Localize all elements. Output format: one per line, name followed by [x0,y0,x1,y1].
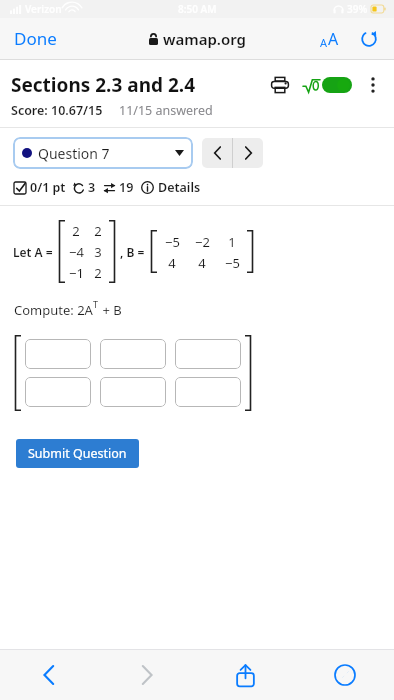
button[interactable]: Answer entry [100,339,166,369]
button[interactable]: Question 7 [13,137,193,169]
staticText: −5 [165,233,180,251]
button[interactable]: Answer entry [175,377,241,407]
staticText: −4 [69,243,84,261]
staticText: 19 [119,179,134,196]
staticText: −5 [225,254,240,272]
button[interactable]: Print [265,70,295,100]
button[interactable]: Submit Question [16,439,139,468]
staticText: 2 [72,222,80,240]
button[interactable]: Answer entry [25,377,91,407]
staticText: 0/1 pt [30,179,66,196]
staticText: Verizon [25,2,62,16]
button[interactable]: More options [360,72,386,98]
button[interactable]: Reload [352,22,386,56]
staticText: 11/15 answered [119,102,213,119]
staticText: 4 [198,254,206,272]
button[interactable]: Back [0,650,98,700]
staticText: 4 [168,254,176,272]
staticText: Let A = [13,244,53,260]
button[interactable]: Bookmarks [295,650,394,700]
staticText: , B = [120,244,145,260]
button[interactable]: Done [0,21,71,56]
staticText: 2 [94,222,102,240]
staticText: −2 [195,233,210,251]
button[interactable]: Next question [233,138,263,168]
staticText: Score: 10.67/15 [11,102,103,119]
staticText: Compute: 2A [14,301,93,319]
staticText: 3 [88,179,96,196]
staticText: Sections 2.3 and 2.4 [11,72,265,98]
staticText: + B [99,301,122,319]
button[interactable]: Forward [98,650,196,700]
staticText: T [93,298,99,310]
button[interactable]: Previous question [202,138,232,168]
staticText: Details [158,179,201,196]
staticText: −1 [69,264,84,282]
staticText: 1 [228,233,236,251]
staticText: 8:50 AM [178,2,217,16]
button[interactable]: Text size [312,22,346,56]
staticText: A [320,35,328,50]
staticText: Question 7 [38,144,175,163]
staticText: A [328,28,339,50]
staticText: 3 [94,243,102,261]
button[interactable]: Answer entry [100,377,166,407]
staticText: 39% [347,2,368,16]
staticText: wamap.org [163,29,246,49]
button[interactable]: Share [196,650,295,700]
button[interactable]: Answer entry [175,339,241,369]
staticText: Done [14,27,57,50]
button[interactable]: Details [141,179,201,196]
button[interactable]: Math view toggle [303,77,352,93]
staticText: 2 [94,264,102,282]
button[interactable]: Answer entry [25,339,91,369]
staticText: Submit Question [28,445,127,462]
